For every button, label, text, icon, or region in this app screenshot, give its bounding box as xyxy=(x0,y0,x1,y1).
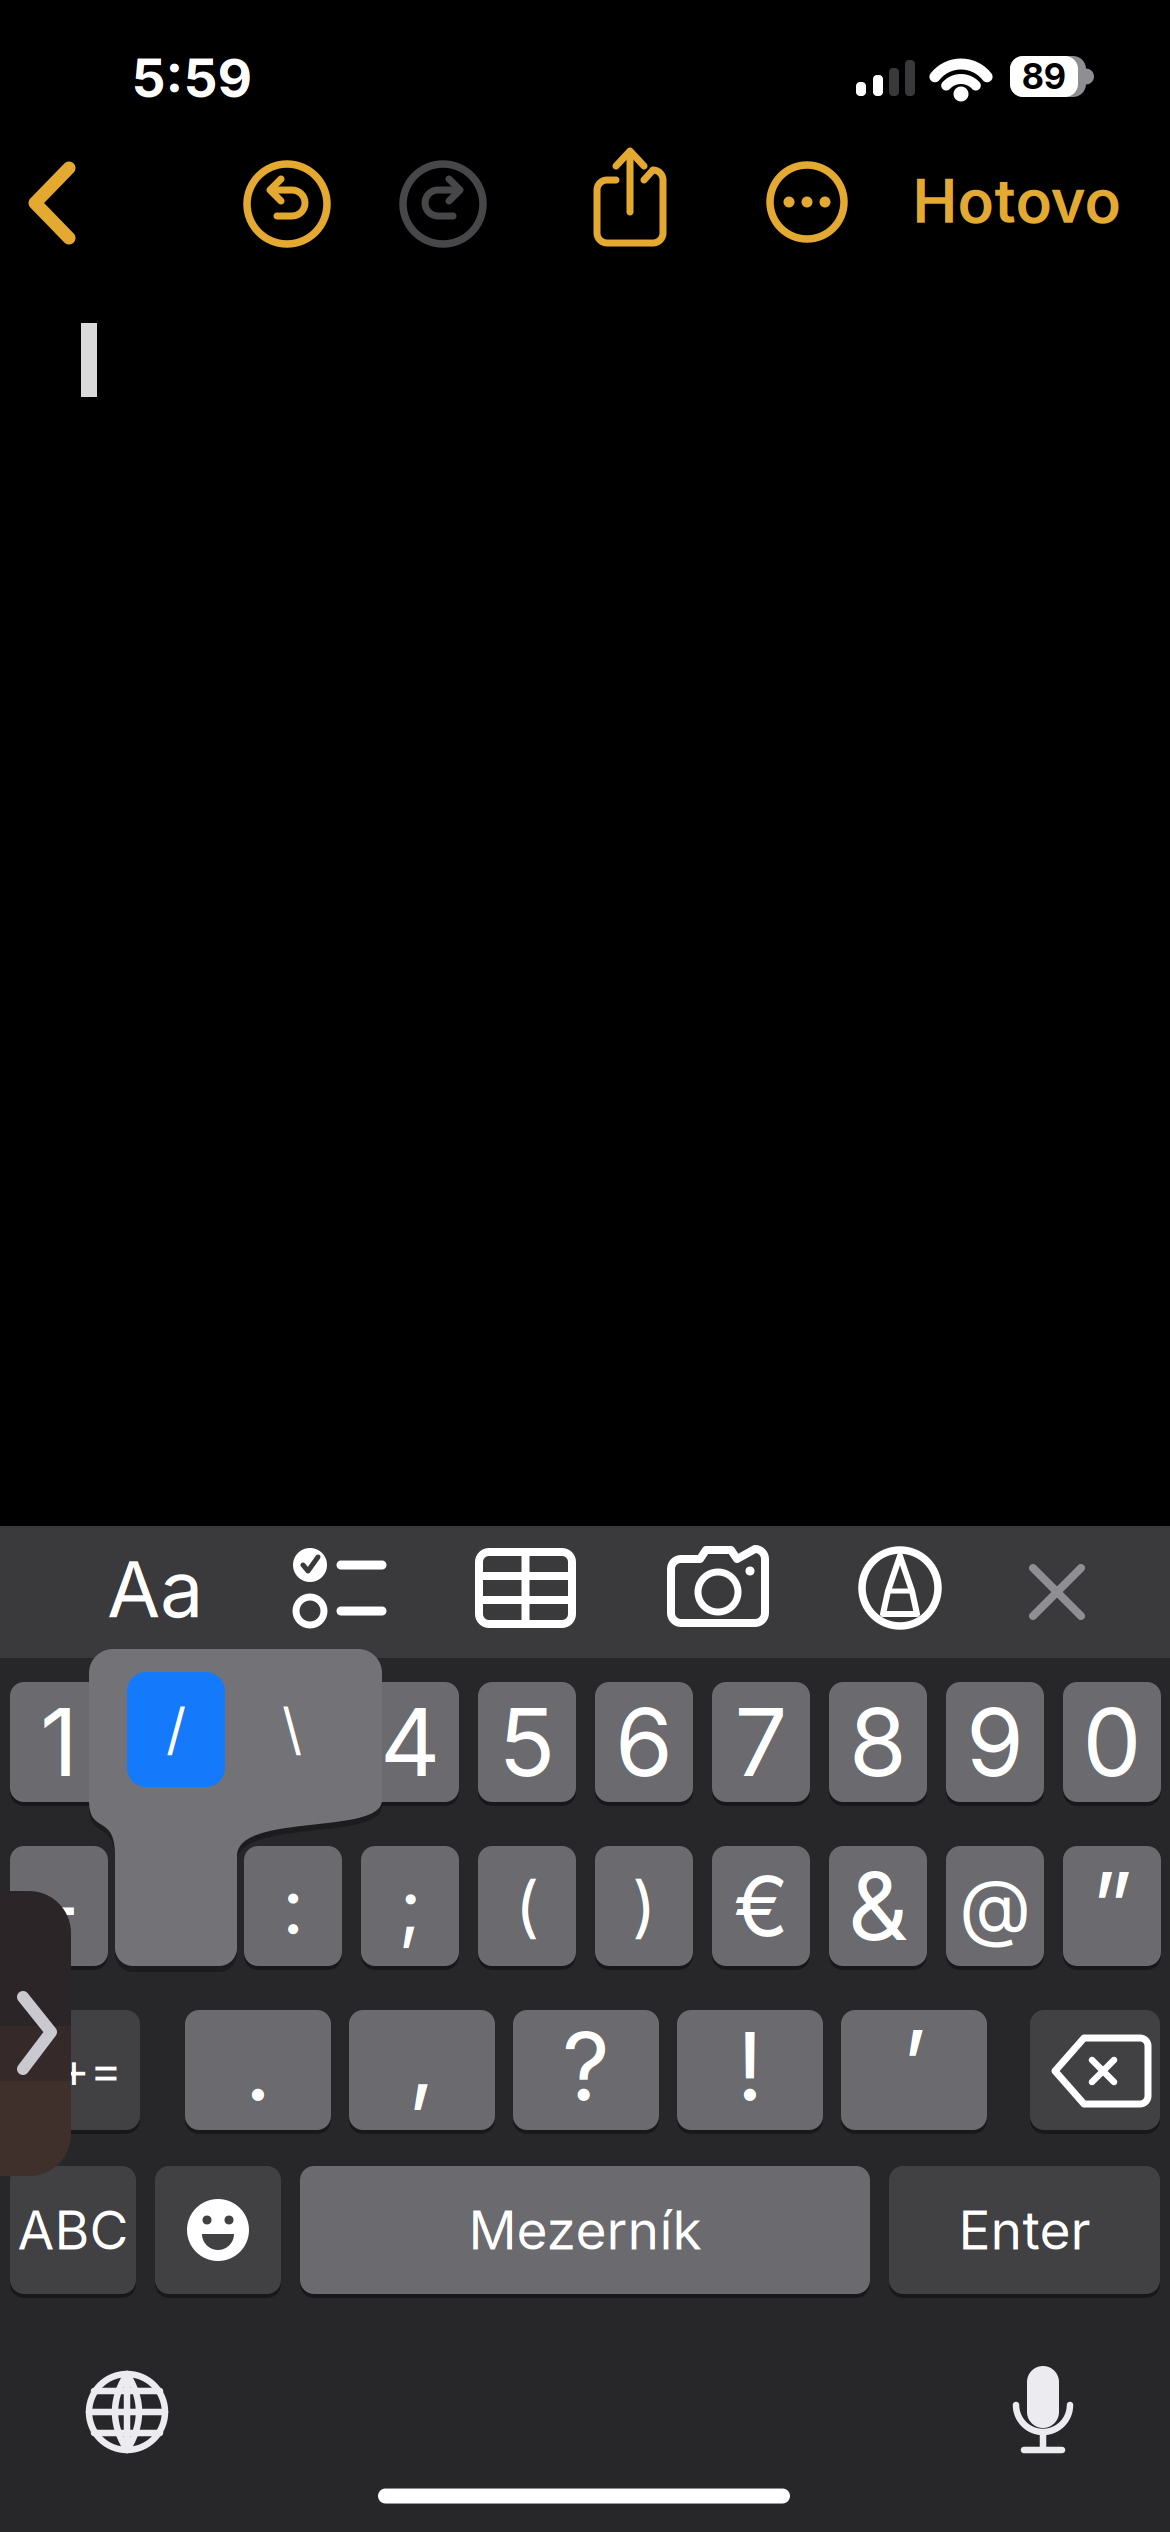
button[interactable]: Share xyxy=(585,142,675,252)
button[interactable]: ABC xyxy=(10,2166,136,2294)
button[interactable]: 2 xyxy=(127,1682,225,1802)
button[interactable]: 6 xyxy=(595,1682,693,1802)
button[interactable]: @ xyxy=(946,1846,1044,1966)
staticText: 3 xyxy=(264,1687,322,1797)
staticText: #+= xyxy=(28,2042,122,2098)
staticText: ; xyxy=(398,1860,421,1952)
button[interactable]: Markup xyxy=(850,1538,950,1638)
button[interactable]: Mezerník xyxy=(300,2166,870,2294)
staticText: @ xyxy=(959,1862,1031,1950)
button[interactable]: Undo xyxy=(239,156,335,252)
staticText: ’ xyxy=(902,2009,926,2119)
staticText: Hotovo xyxy=(912,166,1121,236)
button[interactable]: Format xyxy=(90,1534,220,1644)
button[interactable]: Back xyxy=(10,148,90,258)
staticText: ! xyxy=(736,2011,763,2121)
staticText: ( xyxy=(515,1867,539,1945)
button[interactable]: Emoji xyxy=(155,2166,281,2294)
staticText: ” xyxy=(1091,1851,1132,1961)
button[interactable]: ? xyxy=(513,2010,659,2130)
staticText: . xyxy=(244,2011,271,2121)
staticText: / xyxy=(166,1696,186,1762)
button[interactable]: 7 xyxy=(712,1682,810,1802)
staticText: 2 xyxy=(147,1687,204,1797)
button[interactable]: Hotovo xyxy=(912,166,1121,236)
button[interactable]: #+= xyxy=(10,2010,140,2130)
button[interactable]: 4 xyxy=(361,1682,459,1802)
staticText: : xyxy=(282,1860,304,1952)
staticText: 5 xyxy=(498,1687,555,1797)
button[interactable]: Table xyxy=(465,1538,585,1638)
staticText: ? xyxy=(562,2011,610,2121)
button[interactable]: 5 xyxy=(478,1682,576,1802)
button[interactable]: ) xyxy=(595,1846,693,1966)
button[interactable]: Dismiss keyboard xyxy=(1007,1542,1107,1642)
button[interactable]: ” xyxy=(1063,1846,1161,1966)
button[interactable]: 1 xyxy=(10,1682,108,1802)
button[interactable]: - xyxy=(10,1846,108,1966)
button[interactable]: Dictation xyxy=(993,2350,1093,2460)
button[interactable]: Next keyboard xyxy=(77,2362,177,2462)
button[interactable]: ! xyxy=(677,2010,823,2130)
staticText: 5:59 xyxy=(131,46,252,109)
button[interactable]: Camera xyxy=(653,1540,783,1640)
staticText: Enter xyxy=(958,2198,1090,2261)
staticText: € xyxy=(733,1857,788,1955)
button[interactable]: & xyxy=(829,1846,927,1966)
staticText: , xyxy=(408,2005,435,2115)
button[interactable]: 8 xyxy=(829,1682,927,1802)
staticText: & xyxy=(848,1851,908,1961)
button[interactable]: Redo xyxy=(395,156,491,252)
staticText: 9 xyxy=(966,1687,1024,1797)
staticText: Aa xyxy=(107,1543,203,1635)
staticText: 8 xyxy=(849,1687,907,1797)
staticText: 4 xyxy=(380,1687,440,1797)
button[interactable]: ; xyxy=(361,1846,459,1966)
button[interactable]: Delete xyxy=(1030,2010,1160,2130)
button[interactable]: . xyxy=(185,2010,331,2130)
staticText: 89 xyxy=(1022,56,1066,97)
button[interactable]: ’ xyxy=(841,2010,987,2130)
button[interactable]: 3 xyxy=(244,1682,342,1802)
staticText: 0 xyxy=(1082,1687,1141,1797)
staticText: 1 xyxy=(40,1687,78,1797)
button[interactable]: : xyxy=(244,1846,342,1966)
button[interactable]: 0 xyxy=(1063,1682,1161,1802)
staticText: \ xyxy=(282,1696,302,1762)
button[interactable]: , xyxy=(349,2010,495,2130)
button[interactable]: Enter xyxy=(889,2166,1160,2294)
button[interactable]: More xyxy=(759,154,855,250)
staticText: 7 xyxy=(734,1687,787,1797)
button[interactable]: 9 xyxy=(946,1682,1044,1802)
staticText: 6 xyxy=(615,1687,673,1797)
staticText: ) xyxy=(632,1867,656,1945)
staticText: Mezerník xyxy=(468,2198,701,2261)
staticText: ABC xyxy=(17,2198,128,2261)
button[interactable]: ( xyxy=(478,1846,576,1966)
staticText: - xyxy=(37,1851,80,1961)
button[interactable]: Checklist xyxy=(277,1533,397,1643)
button[interactable]: € xyxy=(712,1846,810,1966)
